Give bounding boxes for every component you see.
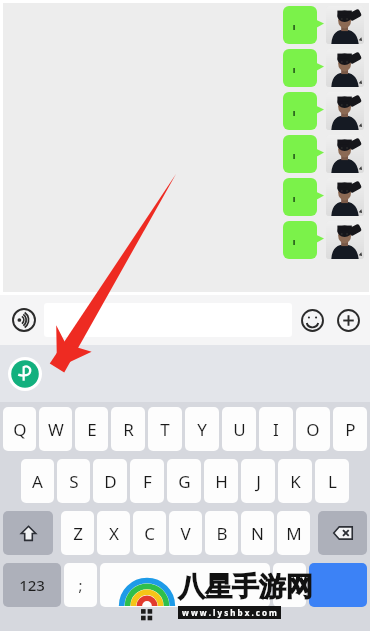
staticText: D [104, 470, 117, 493]
staticText: w w w . l y s h b x . c o m [182, 607, 277, 618]
button[interactable]: Space [100, 563, 270, 607]
staticText: F [143, 470, 152, 493]
button[interactable]: Emoji [295, 303, 329, 337]
button[interactable]: Contact avatar [326, 221, 364, 259]
button[interactable]: Contact avatar [3, 92, 364, 130]
staticText: N [251, 522, 264, 545]
button[interactable]: N [241, 511, 274, 555]
staticText: ; [78, 575, 83, 595]
button[interactable]: H [204, 459, 238, 503]
staticText: U [233, 418, 246, 441]
staticText: O [306, 418, 320, 441]
button[interactable]: R [111, 407, 145, 451]
button[interactable]: G [167, 459, 201, 503]
button[interactable]: Contact avatar [3, 135, 364, 173]
staticText: J [256, 470, 261, 493]
button[interactable]: W [39, 407, 72, 451]
button[interactable]: Payment app [8, 357, 42, 391]
button[interactable]: U [222, 407, 256, 451]
button[interactable]: V [169, 511, 202, 555]
staticText: Q [13, 418, 27, 441]
staticText: C [144, 522, 155, 545]
button[interactable]: Enter [309, 563, 367, 607]
button[interactable]: L [315, 459, 349, 503]
staticText: V [180, 522, 191, 545]
button[interactable]: Voice input [6, 302, 42, 338]
staticText: L [328, 470, 337, 493]
staticText: W [48, 418, 64, 441]
staticText: K [290, 470, 301, 493]
button[interactable]: . [273, 563, 306, 607]
staticText: G [178, 470, 191, 493]
button[interactable]: Contact avatar [326, 92, 364, 130]
button[interactable]: Shift [3, 511, 53, 555]
staticText: T [160, 418, 170, 441]
staticText: . [287, 575, 292, 595]
button[interactable]: C [133, 511, 166, 555]
staticText: Z [73, 522, 83, 545]
staticText: X [109, 522, 119, 545]
staticText: I [273, 418, 279, 441]
button[interactable]: ; [64, 563, 97, 607]
button[interactable]: D [93, 459, 127, 503]
button[interactable]: More [331, 303, 365, 337]
staticText: R [123, 418, 134, 441]
button[interactable]: Contact avatar [3, 178, 364, 216]
staticText: A [32, 470, 43, 493]
staticText: H [215, 470, 228, 493]
button[interactable]: 123 [3, 563, 61, 607]
button[interactable]: Contact avatar [3, 221, 364, 259]
button[interactable]: X [97, 511, 130, 555]
button[interactable]: Contact avatar [326, 49, 364, 87]
button[interactable]: A [21, 459, 54, 503]
button[interactable]: F [130, 459, 164, 503]
button[interactable]: Contact avatar [326, 135, 364, 173]
staticText: E [87, 418, 97, 441]
staticText: P [345, 418, 356, 441]
staticText: 123 [19, 575, 45, 595]
button[interactable]: Contact avatar [3, 6, 364, 44]
button[interactable]: Contact avatar [326, 178, 364, 216]
staticText: 八星手游网 [178, 570, 313, 604]
staticText: B [216, 522, 228, 545]
button[interactable]: J [241, 459, 275, 503]
button[interactable]: Contact avatar [3, 49, 364, 87]
button[interactable]: Backspace [318, 511, 367, 555]
button[interactable]: Contact avatar [326, 6, 364, 44]
button[interactable]: Q [3, 407, 36, 451]
button[interactable]: B [205, 511, 238, 555]
button[interactable] [44, 303, 292, 337]
button[interactable]: P [333, 407, 367, 451]
button[interactable]: S [57, 459, 90, 503]
button[interactable]: M [277, 511, 310, 555]
button[interactable]: I [259, 407, 293, 451]
button[interactable]: Z [61, 511, 94, 555]
staticText: M [286, 522, 302, 545]
staticText: Y [197, 418, 207, 441]
button[interactable]: Y [185, 407, 219, 451]
button[interactable]: O [296, 407, 330, 451]
button[interactable]: E [75, 407, 108, 451]
staticText: S [69, 470, 79, 493]
button[interactable]: T [148, 407, 182, 451]
button[interactable]: K [278, 459, 312, 503]
